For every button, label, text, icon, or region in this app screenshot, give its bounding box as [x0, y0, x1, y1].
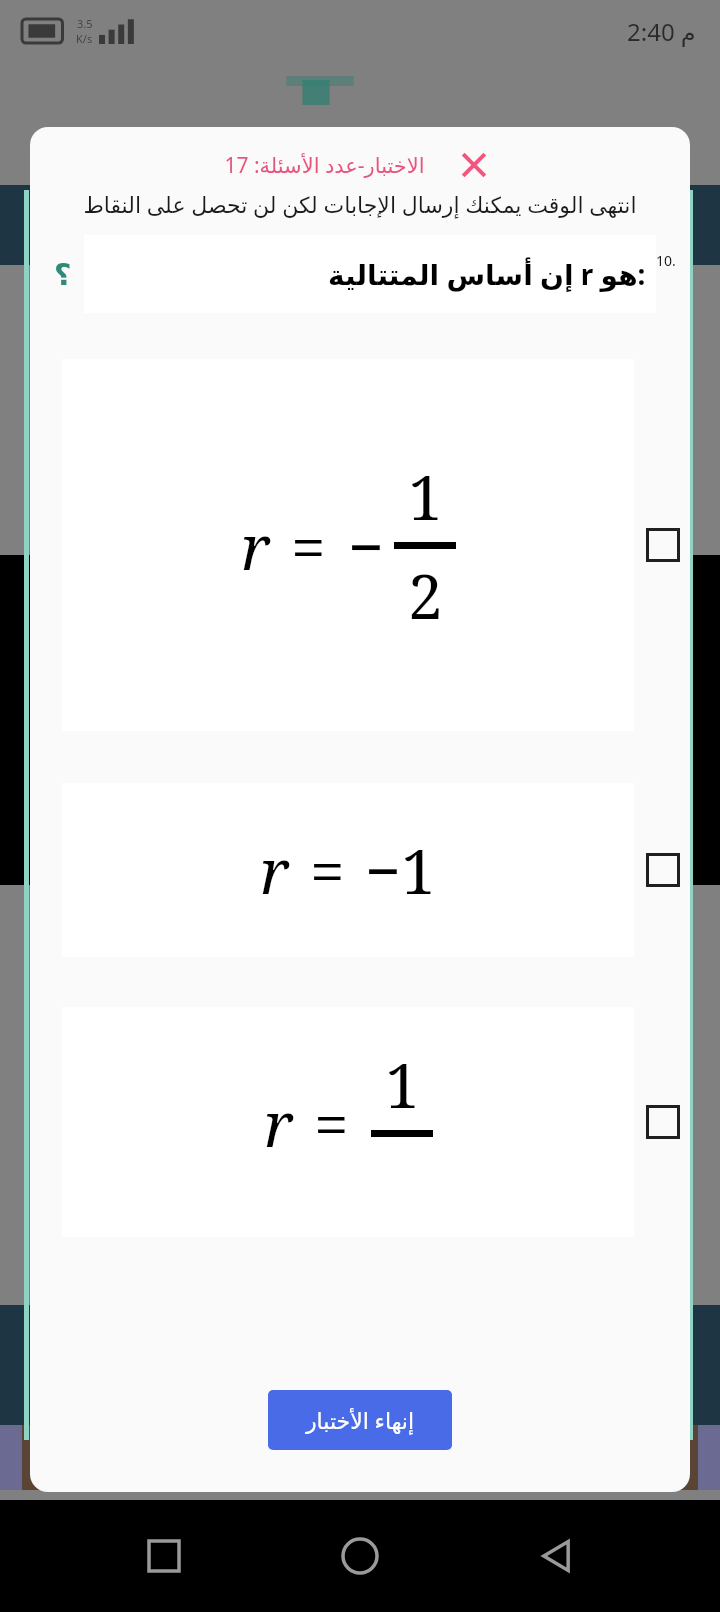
button[interactable]: r — [62, 783, 680, 957]
staticText: K/s — [76, 31, 93, 46]
staticText: انتهى الوقت يمكنك إرسال الإجابات لكن لن … — [64, 189, 656, 219]
staticText: 10. — [656, 251, 676, 270]
button[interactable]: إنهاء الأختبار — [268, 1390, 452, 1450]
staticText: = — [291, 504, 326, 588]
button[interactable]: Home — [328, 1524, 392, 1588]
staticText: − — [348, 504, 384, 588]
button[interactable]: Close — [451, 142, 497, 188]
staticText: ؟ — [54, 257, 72, 292]
staticText: إنهاء الأختبار — [306, 1405, 415, 1435]
staticText: 1 — [408, 454, 443, 538]
staticText: إن أساس المتتالية r هو: — [328, 255, 646, 293]
staticText: = — [310, 828, 345, 912]
staticText: 1 — [385, 1042, 420, 1126]
staticText: −1 — [365, 828, 436, 912]
staticText: = — [314, 1081, 349, 1165]
staticText: م 2:40 — [627, 15, 696, 48]
staticText: الاختبار-عدد الأسئلة: 17 — [224, 151, 425, 180]
button[interactable]: r — [62, 1007, 680, 1237]
button[interactable]: Back — [524, 1524, 588, 1588]
staticText: r — [264, 1081, 294, 1165]
staticText: 2 — [408, 553, 443, 637]
staticText: r — [260, 828, 290, 912]
button[interactable]: r — [62, 359, 680, 731]
staticText: r — [241, 504, 271, 588]
staticText: 3.5 — [77, 16, 93, 31]
button[interactable]: Recent apps — [132, 1524, 196, 1588]
